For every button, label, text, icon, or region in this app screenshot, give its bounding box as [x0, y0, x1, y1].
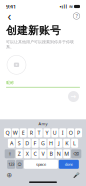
staticText: done — [65, 162, 73, 167]
button[interactable]: space — [24, 160, 58, 169]
staticText: M — [64, 150, 69, 157]
button[interactable]: N — [55, 149, 62, 158]
staticText: Amy — [38, 121, 47, 126]
staticText: G — [41, 140, 45, 147]
staticText: L — [73, 140, 76, 147]
button[interactable]: D — [24, 139, 31, 148]
staticText: space — [36, 162, 46, 167]
button[interactable]: Help — [71, 10, 82, 21]
staticText: P — [77, 129, 80, 136]
button[interactable]: H — [47, 139, 54, 148]
staticText: •ıll — [60, 3, 68, 10]
staticText: J — [58, 140, 59, 147]
staticText: I — [62, 129, 64, 136]
button[interactable]: ☺ — [16, 160, 23, 169]
staticText: S — [18, 140, 21, 147]
staticText: 创建新账号 — [6, 24, 61, 37]
staticText: 123 — [8, 162, 14, 167]
button[interactable]: Dictation — [71, 170, 82, 179]
button[interactable]: I — [59, 128, 66, 137]
button[interactable]: Add profile photo — [6, 54, 27, 75]
staticText: ? — [75, 12, 77, 20]
staticText: 昵称 — [6, 80, 14, 85]
staticText: K — [65, 140, 68, 147]
button[interactable]: Keyboard settings — [4, 170, 15, 179]
staticText: D — [25, 140, 29, 147]
staticText: 🎤 — [73, 172, 80, 178]
staticText: T — [38, 129, 41, 136]
button[interactable]: Amy — [34, 120, 51, 127]
button[interactable]: E — [20, 128, 27, 137]
button[interactable]: B — [47, 149, 54, 158]
staticText: ⊕ — [6, 171, 12, 179]
button[interactable]: M — [63, 149, 70, 158]
staticText: C — [34, 150, 37, 157]
button[interactable]: P — [75, 128, 82, 137]
staticText: N — [57, 150, 61, 157]
staticText: B — [49, 150, 52, 157]
button[interactable]: S — [16, 139, 23, 148]
button[interactable]: U — [51, 128, 58, 137]
button[interactable]: C — [32, 149, 39, 158]
button[interactable]: W — [12, 128, 19, 137]
staticText: ☺ — [17, 162, 21, 166]
staticText: ⌫ — [73, 151, 79, 156]
button[interactable]: K — [63, 139, 70, 148]
staticText: O — [69, 129, 73, 136]
staticText: Y — [45, 129, 48, 136]
button[interactable]: Back — [4, 10, 15, 21]
staticText: → — [70, 93, 76, 100]
button[interactable]: O — [67, 128, 74, 137]
staticText: Z — [18, 150, 21, 157]
staticText: ≈ — [69, 3, 73, 10]
staticText: 可以让其他用户可以搜索到你并于你联系。 — [6, 39, 74, 49]
staticText: E — [22, 129, 25, 136]
button[interactable]: ⌫ — [71, 149, 81, 158]
staticText: W — [13, 129, 18, 136]
button[interactable]: G — [39, 139, 46, 148]
button[interactable]: V — [39, 149, 46, 158]
button[interactable]: A — [8, 139, 15, 148]
staticText: ‹ — [7, 8, 11, 24]
staticText: 9:41 — [6, 3, 16, 10]
button[interactable]: 123 — [7, 160, 15, 169]
staticText: X — [26, 150, 29, 157]
staticText: F — [34, 140, 37, 147]
button[interactable]: J — [55, 139, 62, 148]
button[interactable]: T — [36, 128, 43, 137]
staticText: Q — [5, 129, 9, 136]
button[interactable]: done — [59, 160, 79, 169]
button[interactable]: R — [28, 128, 35, 137]
staticText: U — [53, 129, 57, 136]
staticText: H — [49, 140, 53, 147]
staticText: ⇧ — [8, 151, 11, 156]
staticText: V — [41, 150, 44, 157]
button[interactable]: ⇧ — [5, 149, 15, 158]
button[interactable]: F — [32, 139, 39, 148]
staticText: R — [30, 129, 33, 136]
button[interactable]: Continue — [67, 90, 80, 103]
button[interactable]: Y — [43, 128, 50, 137]
button[interactable]: Q — [4, 128, 11, 137]
button[interactable]: Z — [16, 149, 23, 158]
staticText: A — [10, 140, 13, 147]
button[interactable]: L — [71, 139, 78, 148]
button[interactable]: X — [24, 149, 31, 158]
